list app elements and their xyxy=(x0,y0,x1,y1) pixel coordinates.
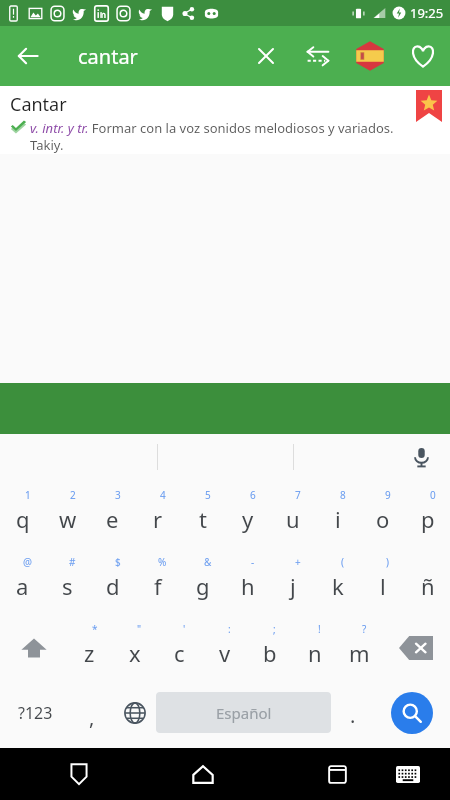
staticText: ) xyxy=(386,555,389,569)
staticText: & xyxy=(204,555,212,569)
staticText: z xyxy=(84,638,95,668)
button[interactable]: 0 xyxy=(405,480,450,547)
staticText: k xyxy=(332,571,344,601)
button[interactable]: Back xyxy=(0,28,56,84)
button[interactable]: Back xyxy=(55,750,103,798)
staticText: ?123 xyxy=(18,702,53,724)
staticText: e xyxy=(106,504,119,534)
staticText: ñ xyxy=(421,571,435,601)
button[interactable]: : xyxy=(202,614,247,681)
button[interactable]: 2 xyxy=(45,480,90,547)
staticText: 8 xyxy=(340,488,346,502)
button[interactable]: 1 xyxy=(0,480,45,547)
staticText: ? xyxy=(362,622,367,636)
staticText: . xyxy=(350,702,356,729)
staticText: " xyxy=(137,622,142,636)
button[interactable]: ' xyxy=(157,614,202,681)
staticText: s xyxy=(62,571,73,601)
button[interactable]: 9 xyxy=(360,480,405,547)
button[interactable]: + xyxy=(270,547,315,614)
staticText: d xyxy=(106,571,120,601)
button[interactable]: Swap languages xyxy=(292,30,344,82)
staticText: l xyxy=(380,571,386,601)
staticText: 7 xyxy=(295,488,301,502)
button[interactable]: Español xyxy=(156,692,331,733)
button[interactable]: ; xyxy=(247,614,292,681)
staticText: * xyxy=(92,622,98,636)
staticText: u xyxy=(286,504,300,534)
staticText: b xyxy=(263,638,277,668)
button[interactable]: - xyxy=(225,547,270,614)
button[interactable]: , xyxy=(70,681,113,744)
button[interactable]: Search xyxy=(391,692,433,734)
staticText: 2 xyxy=(70,488,76,502)
button[interactable]: 4 xyxy=(135,480,180,547)
button[interactable]: Backspace xyxy=(382,614,450,681)
staticText: ; xyxy=(273,622,276,636)
staticText: i xyxy=(335,504,341,534)
staticText: m xyxy=(349,638,370,668)
button[interactable]: ( xyxy=(315,547,360,614)
staticText: 6 xyxy=(250,488,256,502)
staticText: + xyxy=(295,555,301,569)
button[interactable]: Shift xyxy=(0,614,67,681)
staticText: : xyxy=(228,622,231,636)
button[interactable]: Voice input xyxy=(404,440,438,474)
button[interactable]: ? xyxy=(337,614,382,681)
staticText: ( xyxy=(341,555,344,569)
button[interactable]: ) xyxy=(360,547,405,614)
button[interactable]: 6 xyxy=(225,480,270,547)
staticText: v xyxy=(219,638,231,668)
button[interactable]: Bookmark xyxy=(416,90,442,122)
button[interactable]: 5 xyxy=(180,480,225,547)
staticText: p xyxy=(421,504,435,534)
staticText: 19:25 xyxy=(410,4,444,22)
button[interactable]: % xyxy=(135,547,180,614)
button[interactable]: @ xyxy=(0,547,45,614)
button[interactable]: ! xyxy=(292,614,337,681)
button[interactable]: 3 xyxy=(90,480,135,547)
staticText: $ xyxy=(115,555,121,569)
staticText: 4 xyxy=(160,488,166,502)
staticText: j xyxy=(290,571,296,601)
staticText: h xyxy=(241,571,255,601)
button[interactable]: Switch keyboard xyxy=(384,750,432,798)
staticText: r xyxy=(153,504,163,534)
button[interactable]: . xyxy=(331,681,374,744)
staticText: 9 xyxy=(385,488,391,502)
button[interactable]: Home xyxy=(179,750,227,798)
staticText: c xyxy=(174,638,185,668)
staticText: f xyxy=(154,571,162,601)
button[interactable]: Spanish language xyxy=(344,30,396,82)
button[interactable]: Favorite xyxy=(396,29,450,83)
staticText: 1 xyxy=(25,488,31,502)
button[interactable]: " xyxy=(112,614,157,681)
staticText: % xyxy=(158,555,167,569)
button[interactable]: Recent apps xyxy=(313,750,361,798)
staticText: , xyxy=(89,704,95,731)
button[interactable]: Change keyboard language xyxy=(113,681,156,744)
button[interactable]: 7 xyxy=(270,480,315,547)
button[interactable]: Clear xyxy=(240,30,292,82)
button[interactable]: & xyxy=(180,547,225,614)
staticText: @ xyxy=(23,555,32,569)
staticText: cantar xyxy=(78,43,240,70)
staticText: g xyxy=(196,571,210,601)
button[interactable]: ?123 xyxy=(0,681,70,744)
staticText: t xyxy=(199,504,207,534)
staticText: ' xyxy=(183,622,186,636)
staticText: w xyxy=(59,504,77,534)
button[interactable]: * xyxy=(67,614,112,681)
button[interactable]: ñ xyxy=(405,547,450,614)
staticText: # xyxy=(69,555,76,569)
button[interactable]: $ xyxy=(90,547,135,614)
staticText: a xyxy=(16,571,29,601)
button[interactable]: # xyxy=(45,547,90,614)
button[interactable]: 8 xyxy=(315,480,360,547)
staticText: 5 xyxy=(205,488,211,502)
staticText: q xyxy=(16,504,30,534)
staticText: o xyxy=(376,504,390,534)
staticText: y xyxy=(242,504,254,534)
staticText: Cantar xyxy=(10,92,67,117)
